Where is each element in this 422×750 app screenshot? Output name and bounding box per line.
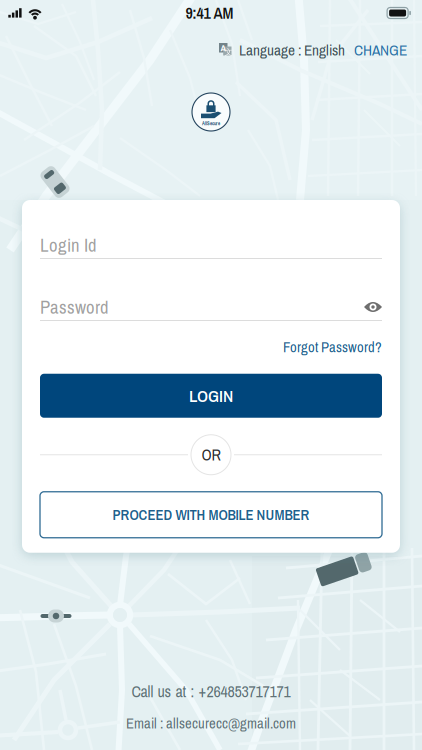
button[interactable]: A (219, 40, 345, 60)
staticText: Password (40, 294, 109, 319)
staticText: 9:41 AM (185, 2, 233, 24)
button[interactable]: PROCEED WITH MOBILE NUMBER (40, 492, 382, 538)
button[interactable]: LOGIN (40, 374, 382, 418)
staticText: Forgot Password? (283, 337, 382, 357)
staticText: OR (201, 444, 220, 466)
button[interactable]: Forgot Password? (283, 334, 382, 360)
staticText: Call us at : +264853717171 (131, 681, 290, 702)
button[interactable]: CHANGE (345, 36, 407, 64)
button[interactable]: Show password (364, 301, 382, 312)
staticText: 文 (224, 47, 232, 57)
staticText: CHANGE (354, 40, 407, 60)
staticText: Email : allsecurecc@gmail.com (126, 713, 296, 733)
staticText: A (220, 42, 226, 54)
staticText: Login Id (40, 232, 97, 257)
staticText: Language : English (239, 40, 345, 60)
staticText: AllSecure (202, 120, 220, 127)
staticText: LOGIN (189, 384, 233, 407)
staticText: PROCEED WITH MOBILE NUMBER (112, 505, 309, 525)
